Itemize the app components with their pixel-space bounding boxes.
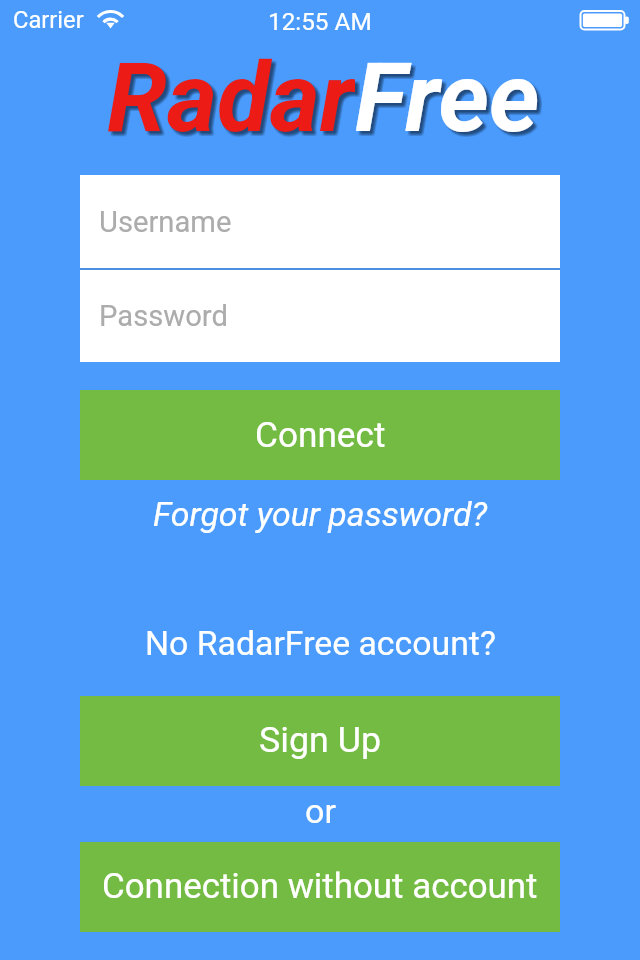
staticText: Username xyxy=(99,205,232,239)
staticText: Radar xyxy=(109,45,357,145)
staticText: Free xyxy=(357,44,542,144)
button[interactable]: Username xyxy=(80,175,560,268)
staticText: Radar xyxy=(109,46,357,146)
staticText: Free xyxy=(359,46,544,146)
staticText: Free xyxy=(360,46,545,146)
staticText: Free xyxy=(355,41,540,141)
staticText: Free xyxy=(360,44,545,144)
staticText: Carrier xyxy=(13,6,84,34)
staticText: Radar xyxy=(112,46,360,146)
button[interactable]: Connect xyxy=(80,390,560,480)
staticText: Forgot your password? xyxy=(153,495,487,535)
staticText: Free xyxy=(357,46,542,146)
staticText: Radar xyxy=(112,44,360,144)
staticText: Free xyxy=(357,43,542,143)
staticText: Radar xyxy=(109,43,357,143)
staticText: Free xyxy=(358,44,543,144)
staticText: Radar xyxy=(111,43,359,143)
staticText: Connection without account xyxy=(102,866,538,907)
staticText: Free xyxy=(359,45,544,145)
staticText: Radar xyxy=(110,43,358,143)
staticText: Free xyxy=(358,43,543,143)
staticText: Free xyxy=(360,45,545,145)
staticText: Radar xyxy=(107,41,355,141)
staticText: Free xyxy=(358,46,543,146)
staticText: Free xyxy=(357,45,542,145)
staticText: Password xyxy=(99,299,228,333)
staticText: Free xyxy=(359,43,544,143)
staticText: Radar xyxy=(109,44,357,144)
button[interactable]: Password xyxy=(80,270,560,362)
other: Wi-Fi signal xyxy=(96,8,124,30)
staticText: Free xyxy=(359,44,544,144)
staticText: Radar xyxy=(110,45,358,145)
staticText: Radar xyxy=(112,43,360,143)
staticText: Radar xyxy=(111,46,359,146)
other: Battery full xyxy=(578,9,632,32)
staticText: Radar xyxy=(111,44,359,144)
staticText: Sign Up xyxy=(259,719,382,761)
staticText: No RadarFree account? xyxy=(145,624,496,664)
button[interactable]: Sign Up xyxy=(80,696,560,786)
staticText: Radar xyxy=(111,45,359,145)
staticText: Free xyxy=(358,45,543,145)
staticText: Radar xyxy=(110,44,358,144)
staticText: Radar xyxy=(110,46,358,146)
staticText: or xyxy=(305,791,336,831)
button[interactable]: Forgot your password? xyxy=(153,495,487,535)
staticText: Connect xyxy=(255,414,386,455)
staticText: Free xyxy=(360,43,545,143)
button[interactable]: Connection without account xyxy=(80,842,560,932)
staticText: Radar xyxy=(112,45,360,145)
staticText: 12:55 AM xyxy=(268,7,372,35)
